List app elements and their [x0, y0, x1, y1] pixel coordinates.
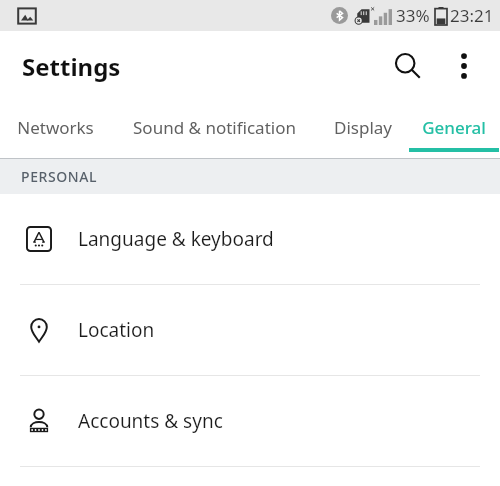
button[interactable]: Language & keyboard: [0, 194, 500, 284]
button[interactable]: Sound & notification: [110, 101, 318, 158]
button[interactable]: Location: [0, 285, 500, 375]
button[interactable]: Display: [318, 101, 408, 158]
staticText: PERSONAL: [21, 167, 98, 186]
staticText: Sound & notification: [133, 116, 296, 139]
staticText: Settings: [22, 50, 121, 83]
button[interactable]: General: [408, 101, 500, 158]
staticText: Networks: [17, 116, 94, 139]
staticText: 23:21: [450, 4, 494, 27]
staticText: Location: [78, 317, 155, 343]
button[interactable]: Networks: [0, 101, 110, 158]
staticText: Accounts & sync: [78, 408, 223, 434]
button[interactable]: Search: [384, 42, 432, 90]
staticText: Language & keyboard: [78, 226, 274, 252]
button[interactable]: More options: [442, 44, 486, 88]
staticText: Display: [334, 116, 392, 139]
staticText: General: [422, 116, 486, 139]
button[interactable]: Accounts & sync: [0, 376, 500, 466]
staticText: 33%: [396, 4, 430, 27]
